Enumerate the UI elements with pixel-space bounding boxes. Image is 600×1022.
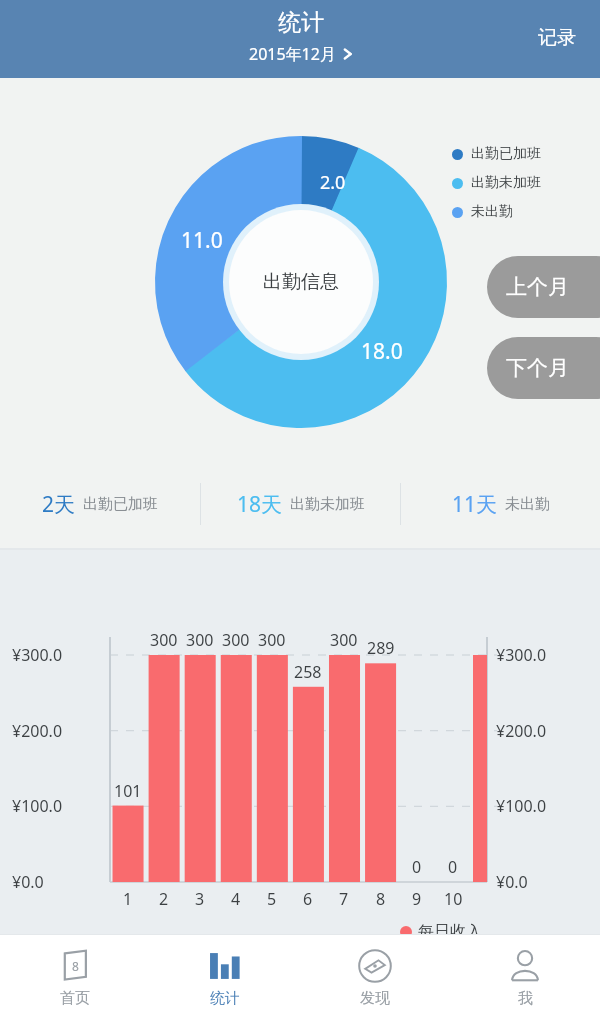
staticText: 101 [114,780,142,802]
button[interactable]: 出勤未加班 [452,173,541,193]
staticText: 首页 [60,989,90,1008]
staticText: ¥0.0 [496,871,528,893]
staticText: 未出勤 [505,495,550,514]
staticText: 11天 [452,490,498,519]
staticText: 统计 [278,8,324,37]
staticText: 统计 [210,989,240,1008]
staticText: 300 [222,629,250,651]
button[interactable]: 统计 [150,934,300,1022]
button[interactable]: 2天 [0,468,200,540]
staticText: 发现 [360,989,390,1008]
other: 发现 [358,949,392,983]
staticText: 0 [448,856,458,878]
staticText: 11.0 [181,226,223,255]
staticText: 300 [150,629,178,651]
other: 我 [508,949,542,983]
staticText: 1 [123,888,133,910]
button[interactable]: 11天 [401,468,600,540]
staticText: ¥300.0 [12,644,63,666]
staticText: 258 [294,661,322,683]
staticText: 8 [72,958,79,974]
other: 统计 [208,949,242,983]
staticText: 记录 [538,26,576,50]
staticText: ¥300.0 [496,644,547,666]
button[interactable]: 记录 [530,20,584,56]
staticText: 我 [518,989,533,1008]
staticText: ¥100.0 [496,795,547,817]
staticText: 289 [367,637,395,659]
staticText: 300 [330,629,358,651]
staticText: 7 [339,888,349,910]
button[interactable]: 18天 [201,468,400,540]
other: 首页 [58,949,92,983]
button[interactable]: 上个月 [487,256,600,318]
staticText: 6 [303,888,313,910]
staticText: ¥200.0 [12,720,63,742]
staticText: 上个月 [506,274,569,300]
button[interactable]: 首页 [0,934,150,1022]
button[interactable]: 出勤信息 [230,265,372,299]
staticText: 出勤已加班 [83,495,158,514]
button[interactable]: 2015年12月 [241,41,360,67]
staticText: 18天 [237,490,283,519]
staticText: 出勤未加班 [471,174,541,192]
staticText: 300 [186,629,214,651]
button[interactable]: 未出勤 [452,202,513,222]
staticText: 9 [412,888,422,910]
staticText: 下个月 [506,355,569,381]
staticText: 300 [258,629,286,651]
staticText: 出勤信息 [263,270,339,294]
staticText: 18.0 [361,337,403,366]
staticText: 出勤未加班 [290,495,365,514]
staticText: ¥0.0 [12,871,44,893]
staticText: ¥200.0 [496,720,547,742]
staticText: ¥100.0 [12,795,63,817]
staticText: 2015年12月 [249,43,336,65]
staticText: 8 [376,888,386,910]
staticText: 4 [231,888,241,910]
staticText: 出勤已加班 [471,145,541,163]
staticText: 0 [412,856,422,878]
staticText: 每日收入 [418,922,482,942]
staticText: 2.0 [320,170,346,195]
staticText: 2 [159,888,169,910]
staticText: 10 [444,888,463,910]
staticText: 3 [195,888,205,910]
button[interactable]: 下个月 [487,337,600,399]
staticText: 2天 [42,490,76,519]
button[interactable]: 发现 [300,934,450,1022]
staticText: 5 [267,888,277,910]
button[interactable]: 我 [450,934,600,1022]
staticText: 未出勤 [471,203,513,221]
button[interactable]: 出勤已加班 [452,144,541,164]
